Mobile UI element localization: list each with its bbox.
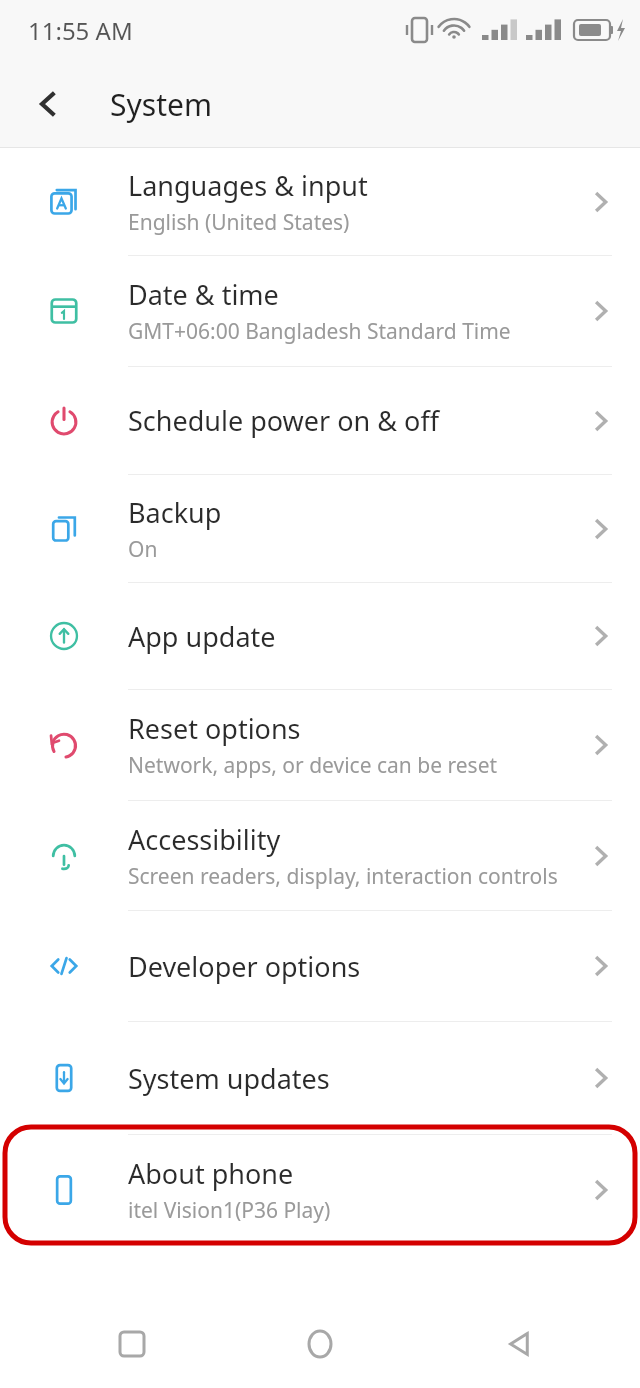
staticText: 11:55 AM	[28, 14, 133, 47]
staticText: System	[110, 84, 212, 125]
button[interactable]: Languages & input	[0, 148, 640, 255]
staticText: Network, apps, or device can be reset	[128, 751, 498, 780]
staticText: Developer options	[128, 948, 361, 985]
staticText: Backup	[128, 494, 222, 531]
button[interactable]: System updates	[0, 1022, 640, 1134]
staticText: itel Vision1(P36 Play)	[128, 1196, 331, 1225]
staticText: GMT+06:00 Bangladesh Standard Time	[128, 317, 511, 346]
staticText: English (United States)	[128, 208, 350, 237]
staticText: Schedule power on & off	[128, 402, 439, 439]
staticText: About phone	[128, 1155, 294, 1192]
button[interactable]: Schedule power on & off	[0, 367, 640, 474]
button[interactable]: Home	[280, 1304, 360, 1384]
staticText: Screen readers, display, interaction con…	[128, 862, 558, 891]
staticText: Languages & input	[128, 167, 368, 204]
button[interactable]: Back	[480, 1304, 560, 1384]
button[interactable]: About phone	[0, 1135, 640, 1245]
staticText: On	[128, 535, 158, 564]
staticText: System updates	[128, 1060, 330, 1097]
button[interactable]: Back	[14, 70, 82, 138]
staticText: App update	[128, 618, 276, 655]
button[interactable]: Accessibility	[0, 801, 640, 910]
button[interactable]: Reset options	[0, 690, 640, 800]
button[interactable]: Developer options	[0, 911, 640, 1021]
staticText: Reset options	[128, 710, 301, 747]
staticText: Accessibility	[128, 821, 281, 858]
staticText: Date & time	[128, 276, 279, 313]
button[interactable]: Backup	[0, 475, 640, 582]
button[interactable]: Date & time	[0, 256, 640, 366]
button[interactable]: Recent apps	[92, 1304, 172, 1384]
button[interactable]: App update	[0, 583, 640, 689]
